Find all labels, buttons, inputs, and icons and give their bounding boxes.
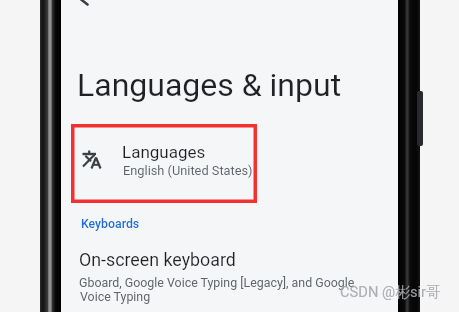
staticText: Voice Typing: [80, 289, 151, 304]
button[interactable]: [71, 124, 257, 203]
staticText: Keyboards: [81, 217, 140, 231]
staticText: Languages: [122, 142, 206, 162]
button[interactable]: On-screen keyboard: [76, 246, 381, 308]
staticText: CSDN @彬sir哥: [340, 283, 441, 302]
staticText: Gboard, Google Voice Typing [Legacy], an…: [79, 275, 355, 290]
button[interactable]: [68, 0, 102, 16]
staticText: Languages & input: [77, 66, 342, 104]
staticText: On-screen keyboard: [79, 249, 236, 270]
staticText: English (United States): [123, 163, 253, 178]
